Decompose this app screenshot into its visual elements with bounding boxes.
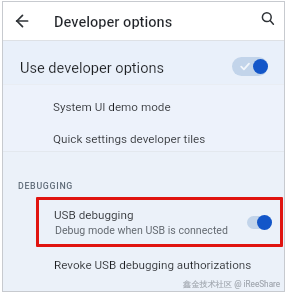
staticText: Developer options: [54, 13, 173, 29]
staticText: DEBUGGING: [18, 181, 74, 191]
button[interactable]: System UI demo mode: [3, 91, 284, 123]
button[interactable]: [254, 5, 280, 31]
staticText: Revoke USB debugging authorizations: [54, 258, 252, 272]
button[interactable]: [3, 197, 284, 247]
button[interactable]: [8, 8, 34, 34]
button[interactable]: Use developer options: [3, 41, 284, 84]
staticText: Use developer options: [20, 59, 165, 75]
staticText: Quick settings developer tiles: [53, 132, 206, 146]
button[interactable]: Quick settings developer tiles: [3, 123, 284, 155]
staticText: Debug mode when USB is connected: [55, 224, 228, 236]
staticText: USB debugging: [54, 208, 134, 222]
staticText: 鑫金技术社区 @ iReeShare: [183, 279, 281, 289]
button[interactable]: Revoke USB debugging authorizations: [3, 249, 284, 281]
staticText: System UI demo mode: [53, 100, 171, 114]
